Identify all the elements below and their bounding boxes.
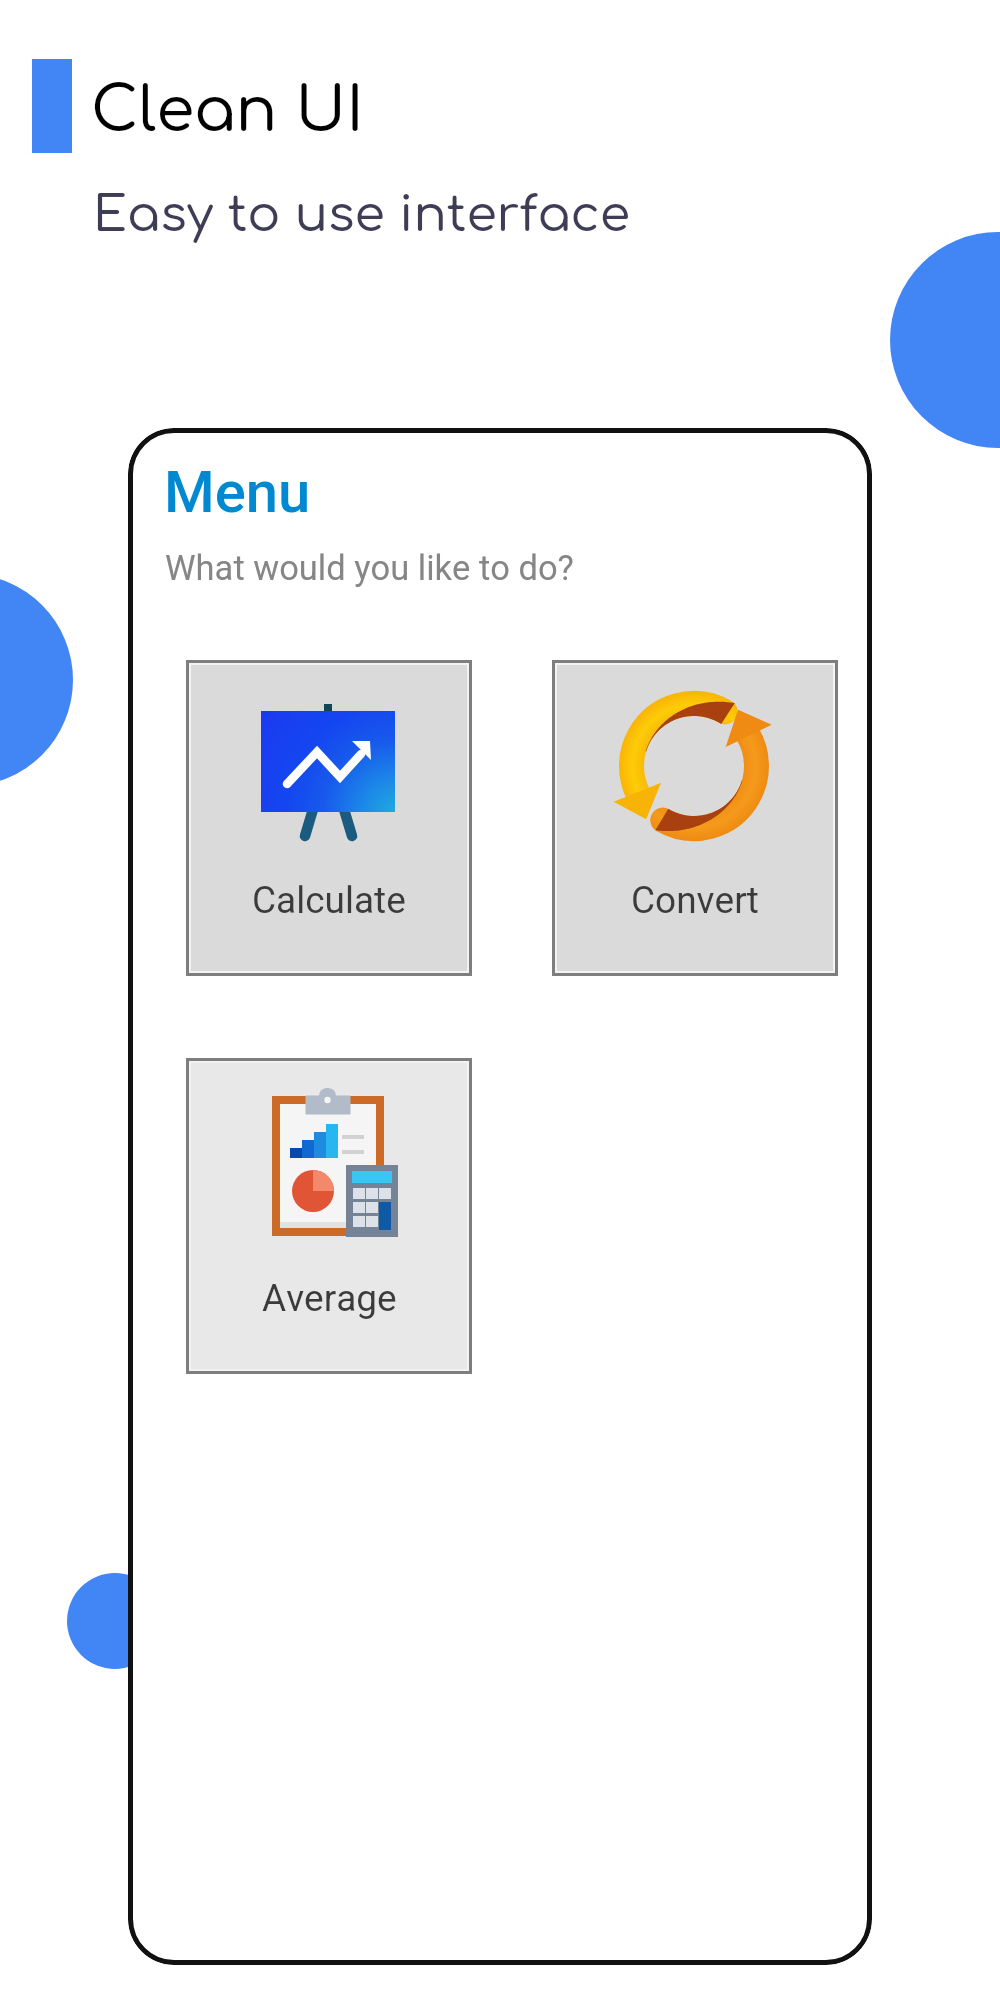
- staticText: Convert: [631, 879, 759, 922]
- button[interactable]: Calculate: [186, 660, 472, 976]
- staticText: Average: [262, 1277, 397, 1320]
- staticText: Calculate: [252, 879, 406, 922]
- button[interactable]: Convert: [552, 660, 838, 976]
- staticText: Menu: [164, 458, 311, 526]
- staticText: Easy to use interface: [93, 188, 630, 243]
- staticText: What would you like to do?: [165, 548, 574, 588]
- staticText: Clean UI: [91, 77, 364, 146]
- button[interactable]: Average: [186, 1058, 472, 1374]
